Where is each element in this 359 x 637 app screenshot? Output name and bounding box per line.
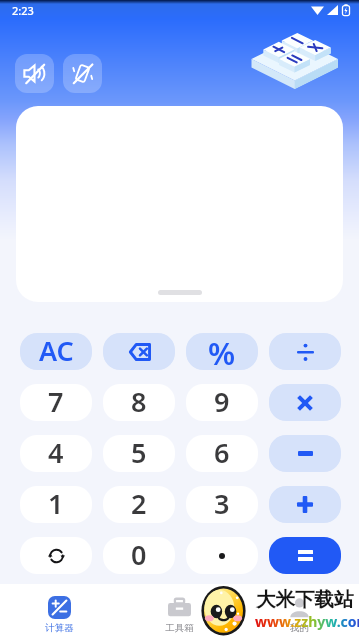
staticText: 4 [48, 435, 64, 471]
staticText: 工具箱 [165, 622, 194, 634]
staticText: % [208, 333, 236, 369]
staticText: 1 [48, 486, 64, 522]
staticText: 5 [131, 435, 147, 471]
button[interactable]: 计算器 [0, 588, 119, 634]
staticText: 0 [131, 537, 147, 573]
button[interactable]: Delete [103, 333, 175, 370]
button[interactable]: 工具箱 [119, 588, 239, 634]
staticText: 大米下载站 [256, 587, 354, 612]
button[interactable]: 0 [103, 537, 175, 574]
button[interactable]: 2 [103, 486, 175, 523]
button[interactable]: Subtract [269, 435, 341, 472]
button[interactable]: 我的 [239, 588, 359, 634]
button[interactable]: Divide [269, 333, 341, 370]
button[interactable]: 7 [20, 384, 92, 421]
button[interactable]: Multiply [269, 384, 341, 421]
staticText: 8 [131, 384, 147, 420]
staticText: www.zzhyw.com [255, 612, 359, 631]
staticText: 6 [214, 435, 230, 471]
staticText: AC [39, 333, 74, 369]
staticText: 计算器 [45, 622, 74, 634]
button[interactable]: 6 [186, 435, 258, 472]
button[interactable]: 5 [103, 435, 175, 472]
button[interactable]: Mute [15, 54, 54, 93]
button[interactable]: Vibration off [63, 54, 102, 93]
button[interactable]: AC [20, 333, 92, 370]
button[interactable]: History [20, 537, 92, 574]
staticText: 7 [48, 384, 64, 420]
button[interactable]: 4 [20, 435, 92, 472]
button[interactable]: 1 [20, 486, 92, 523]
staticText: 3 [214, 486, 230, 522]
button[interactable]: 3 [186, 486, 258, 523]
button[interactable]: Decimal point [186, 537, 258, 574]
button[interactable] [16, 106, 343, 302]
button[interactable]: 9 [186, 384, 258, 421]
button[interactable]: Add [269, 486, 341, 523]
staticText: 9 [214, 384, 230, 420]
staticText: 2:23 [12, 3, 34, 18]
staticText: 2 [131, 486, 147, 522]
button[interactable]: Equals [269, 537, 341, 574]
staticText: 我的 [290, 622, 309, 634]
button[interactable]: % [186, 333, 258, 370]
button[interactable]: 8 [103, 384, 175, 421]
